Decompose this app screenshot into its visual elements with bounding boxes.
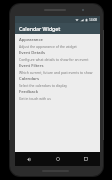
- button[interactable]: Event Details: [15, 49, 100, 62]
- staticText: Get in touch with us: [19, 96, 51, 101]
- button[interactable]: Event Filters: [15, 62, 100, 75]
- staticText: Select the calendars to display: [19, 83, 68, 88]
- staticText: Event Details: [19, 50, 46, 56]
- staticText: Appearance: [19, 37, 43, 43]
- staticText: Adjust the appearance of the widget: [19, 44, 77, 49]
- button[interactable]: Calendars: [15, 75, 100, 88]
- staticText: Which current, future and past events to…: [19, 70, 93, 75]
- staticText: 14:08: [89, 18, 98, 22]
- button[interactable]: Feedback: [15, 88, 100, 101]
- button[interactable]: Recent apps: [74, 152, 98, 166]
- button[interactable]: Home: [46, 152, 70, 166]
- staticText: Feedback: [19, 89, 39, 95]
- staticText: Calendars: [19, 76, 40, 82]
- button[interactable]: Back: [17, 152, 41, 166]
- staticText: Configure what details to show for an ev…: [19, 57, 89, 62]
- button[interactable]: Appearance: [15, 36, 100, 49]
- button[interactable]: Calendar Widget: [15, 23, 100, 34]
- staticText: Calendar Widget: [19, 25, 61, 32]
- staticText: Event Filters: [19, 63, 44, 69]
